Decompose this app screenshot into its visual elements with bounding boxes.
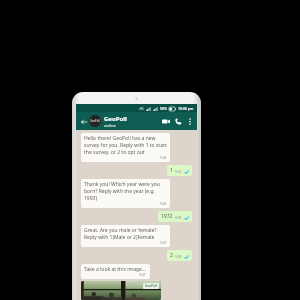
button[interactable]: Great. Are you male or female? Reply wit… <box>81 225 170 247</box>
staticText: GeoPoll <box>145 284 157 288</box>
staticText: 9:44 <box>160 156 167 160</box>
button[interactable]: Take a look at this image... <box>81 264 150 279</box>
staticText: 10:06 pm <box>178 106 194 111</box>
staticText: Take a look at this image... <box>84 266 146 273</box>
staticText: 50% <box>160 106 167 111</box>
staticText: Great. Are you male or female? Reply wit… <box>84 227 167 241</box>
staticText: GeoPoll <box>104 115 127 123</box>
staticText: online <box>104 123 116 128</box>
button[interactable]: 1972 <box>158 211 192 222</box>
staticText: 9:47 <box>139 273 146 277</box>
button[interactable]: Video call <box>160 116 171 127</box>
staticText: GeoPoll <box>90 119 100 123</box>
staticText: 2 <box>170 252 173 259</box>
button[interactable]: 2 <box>167 250 192 261</box>
button[interactable]: Hello there! GeoPoll has a new survey fo… <box>81 133 170 162</box>
staticText: 9:48 <box>175 255 182 259</box>
staticText: 1972 <box>161 213 173 220</box>
button[interactable]: Contact avatar <box>89 115 101 127</box>
button[interactable]: Thank you! Which year were you born? Rep… <box>81 179 170 208</box>
staticText: Hello there! GeoPoll has a new survey fo… <box>84 135 167 156</box>
button[interactable]: More options <box>185 117 194 126</box>
button[interactable]: Photo message <box>81 281 161 300</box>
staticText: 9:47 <box>160 241 167 245</box>
staticText: 1 <box>170 167 173 174</box>
staticText: 9:46 <box>175 216 182 220</box>
button[interactable]: Back <box>79 117 88 126</box>
button[interactable]: GeoPoll <box>104 115 160 128</box>
staticText: Thank you! Which year were you born? Rep… <box>84 181 167 202</box>
button[interactable]: Voice call <box>173 116 184 127</box>
button[interactable]: 1 <box>167 165 192 176</box>
staticText: 9:45 <box>160 202 167 206</box>
staticText: 9:45 <box>175 170 182 174</box>
